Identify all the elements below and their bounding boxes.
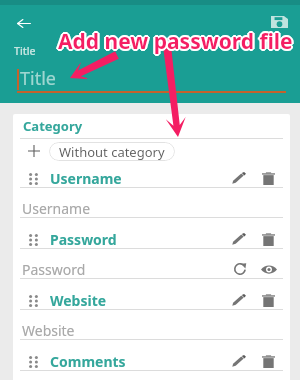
button[interactable]: Show password <box>259 262 279 276</box>
staticText: Add new password file <box>57 28 292 57</box>
staticText: Password <box>50 230 117 249</box>
staticText: Add new password file <box>56 27 291 56</box>
staticText: Add new password file <box>59 26 294 55</box>
button[interactable]: Delete Website <box>258 293 278 307</box>
button[interactable]: Generate password <box>230 262 250 276</box>
staticText: Username <box>22 199 91 218</box>
staticText: Without category <box>59 143 165 161</box>
staticText: Comments <box>50 352 126 371</box>
staticText: Add new password file <box>57 26 292 55</box>
staticText: Add new password file <box>58 25 293 54</box>
staticText: Password <box>22 260 86 279</box>
button[interactable]: Delete Comments <box>258 354 278 368</box>
button[interactable]: Edit Password <box>229 232 249 246</box>
staticText: Add new password file <box>58 27 293 56</box>
staticText: Title <box>14 44 36 58</box>
staticText: Add new password file <box>58 29 293 58</box>
button[interactable]: Add category <box>24 141 44 161</box>
staticText: Website <box>50 291 107 310</box>
button[interactable]: Without category <box>49 142 175 161</box>
button[interactable]: Edit Website <box>229 293 249 307</box>
staticText: Category <box>23 117 83 135</box>
button[interactable]: Delete Password <box>258 232 278 246</box>
button[interactable]: Edit Username <box>229 171 249 185</box>
staticText: Website <box>22 321 75 340</box>
button[interactable]: Delete Username <box>258 171 278 185</box>
button[interactable]: Edit Comments <box>229 354 249 368</box>
staticText: Title <box>20 66 56 91</box>
staticText: Add new password file <box>59 28 294 57</box>
staticText: Add new password file <box>60 27 295 56</box>
button[interactable]: Back <box>10 9 38 37</box>
button[interactable]: Save <box>268 10 291 33</box>
staticText: Username <box>50 169 122 188</box>
